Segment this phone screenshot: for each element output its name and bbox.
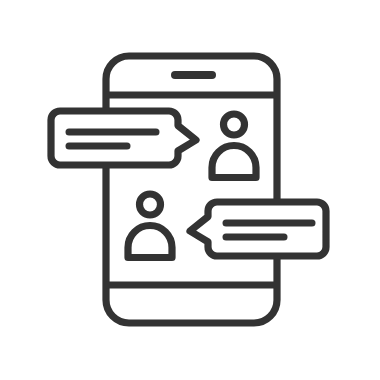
button[interactable]: Mobile chat conversation illustration (0, 0, 380, 380)
